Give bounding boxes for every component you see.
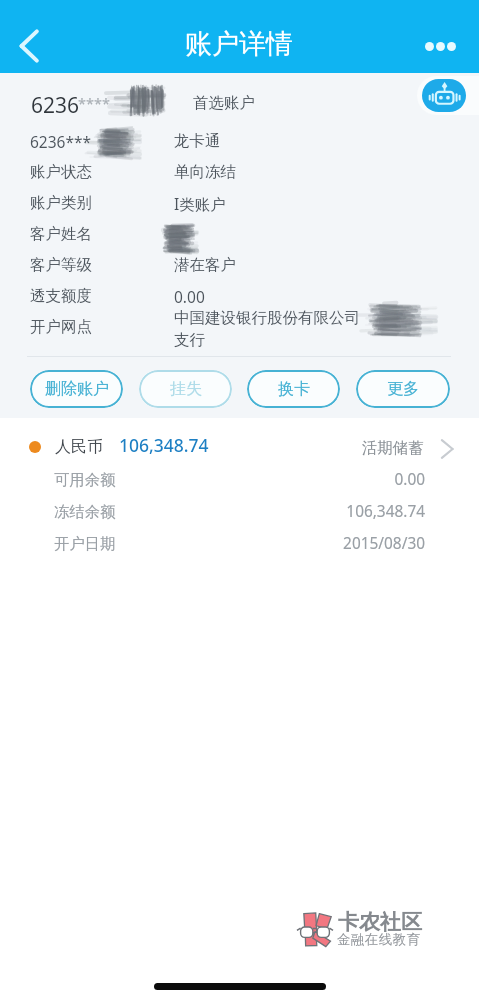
button[interactable]: 挂失: [139, 370, 232, 408]
staticText: 挂失: [170, 379, 202, 399]
staticText: 账户状态: [30, 162, 92, 182]
staticText: 客户等级: [30, 255, 92, 275]
staticText: 2015/08/30: [343, 533, 425, 554]
staticText: 可用余额: [54, 470, 116, 489]
staticText: 人民币: [55, 437, 103, 457]
staticText: 账户详情: [185, 27, 293, 61]
staticText: 透支额度: [30, 286, 92, 306]
staticText: 活期储蓄: [362, 438, 424, 457]
staticText: 106,348.74: [119, 433, 209, 457]
staticText: 冻结余额: [54, 502, 116, 521]
staticText: 支行: [174, 330, 205, 350]
staticText: 账户类别: [30, 193, 92, 213]
staticText: 客户姓名: [30, 224, 92, 244]
button[interactable]: Assistant: [417, 76, 479, 115]
button[interactable]: More options: [412, 24, 468, 68]
staticText: 单向冻结: [174, 162, 236, 182]
staticText: 潜在客户: [174, 255, 236, 275]
staticText: 6236***: [30, 131, 92, 152]
button[interactable]: 更多: [356, 370, 450, 408]
staticText: 106,348.74: [346, 501, 425, 522]
staticText: 更多: [387, 379, 419, 399]
staticText: 首选账户: [193, 93, 255, 113]
button[interactable]: Back: [5, 22, 53, 70]
staticText: 龙卡通: [174, 131, 221, 151]
staticText: ****: [78, 93, 110, 113]
staticText: 开户日期: [54, 534, 116, 553]
staticText: 卡农社区: [338, 909, 422, 935]
button[interactable]: 换卡: [247, 370, 340, 408]
staticText: 6236: [31, 91, 80, 120]
staticText: 金融在线教育: [337, 931, 421, 948]
staticText: 0.00: [174, 286, 205, 307]
staticText: 删除账户: [45, 379, 109, 399]
staticText: 换卡: [278, 379, 310, 399]
staticText: 开户网点: [30, 317, 92, 337]
staticText: I类账户: [174, 193, 226, 214]
staticText: 0.00: [394, 469, 425, 490]
staticText: 中国建设银行股份有限公司: [174, 308, 360, 328]
button[interactable]: [0, 430, 479, 466]
button[interactable]: 删除账户: [30, 370, 123, 408]
